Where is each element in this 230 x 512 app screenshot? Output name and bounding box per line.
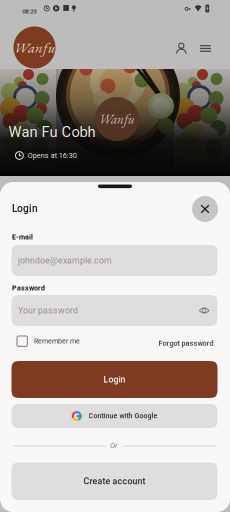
button[interactable]: Create account: [11, 462, 217, 500]
staticText: johndoe@example.com: [18, 255, 112, 266]
staticText: E-mail: [12, 233, 33, 241]
button[interactable]: Continue with Google: [11, 404, 217, 428]
button[interactable]: Account: [169, 35, 194, 61]
staticText: Opens at 16:30: [28, 151, 77, 160]
staticText: Or: [110, 440, 118, 450]
staticText: 08:23: [22, 8, 36, 15]
button[interactable]: Forgot password: [158, 335, 213, 352]
staticText: Wanfu: [14, 38, 55, 57]
staticText: Forgot password: [158, 339, 213, 348]
staticText: Wan Fu Cobh: [8, 123, 95, 141]
staticText: Login: [12, 202, 38, 214]
staticText: Login: [103, 374, 125, 385]
staticText: Wanfu: [99, 110, 135, 128]
staticText: Create account: [83, 476, 145, 486]
staticText: Remember me: [34, 337, 80, 345]
button[interactable]: Remember me: [12, 332, 80, 350]
staticText: Your password: [18, 305, 78, 316]
staticText: Password: [12, 284, 45, 292]
button[interactable]: Login: [11, 361, 217, 398]
staticText: Continue with Google: [88, 412, 157, 420]
button[interactable]: Menu: [192, 37, 218, 59]
button[interactable]: Close: [192, 196, 218, 222]
